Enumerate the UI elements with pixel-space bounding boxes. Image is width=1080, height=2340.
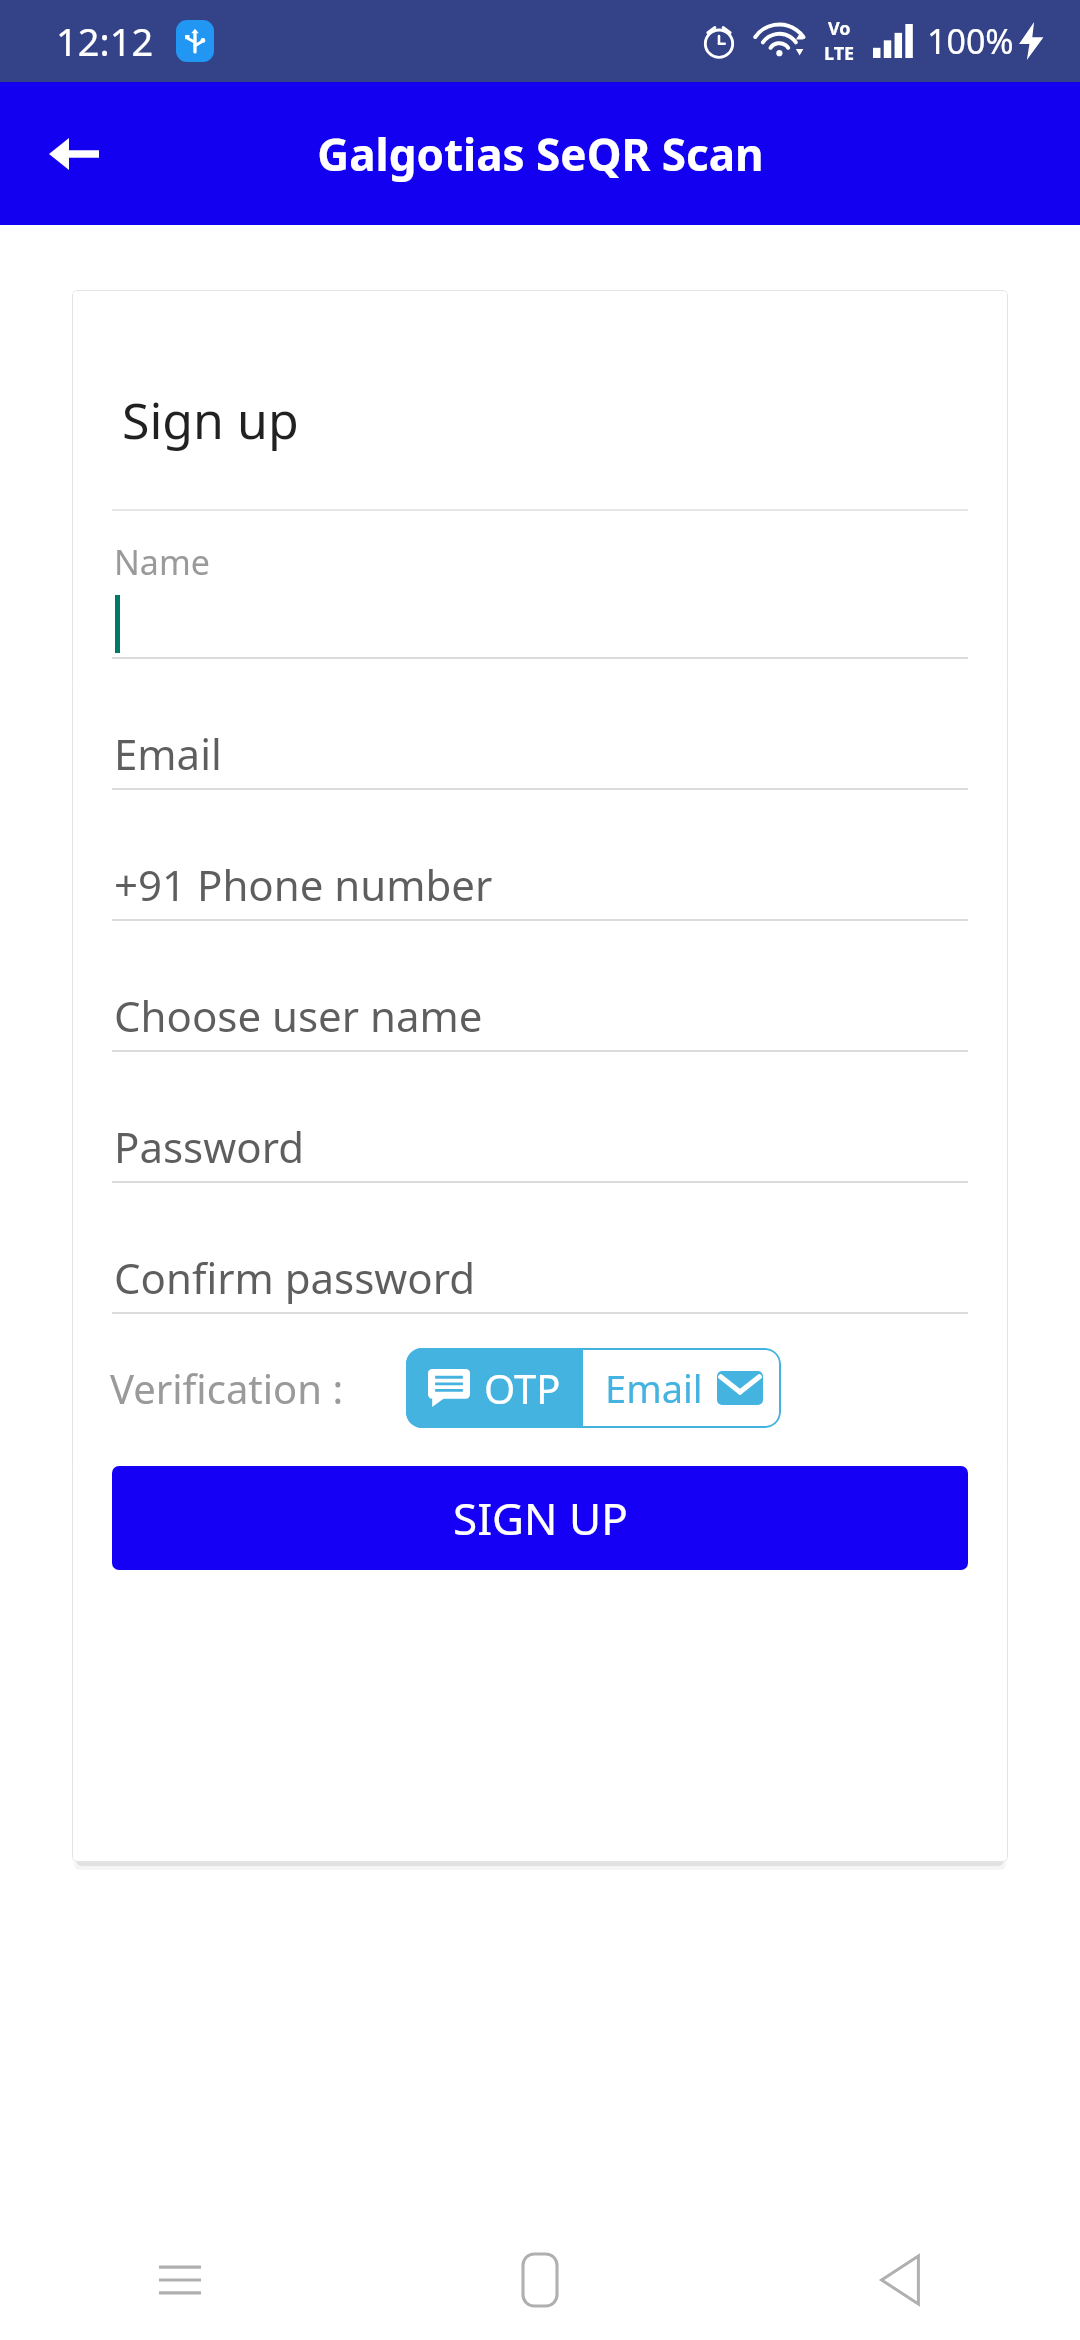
button[interactable]: Password [112,1118,968,1183]
staticText: SIGN UP [453,1488,628,1548]
button[interactable]: Home [360,2220,720,2340]
button[interactable]: Email [112,725,968,790]
button[interactable]: SIGN UP [112,1466,968,1570]
staticText: Sign up [122,386,299,454]
button[interactable]: Confirm password [112,1249,968,1314]
staticText: +91 Phone number [114,856,493,913]
staticText: Vo [828,16,851,41]
staticText: Verification : [110,1361,344,1415]
staticText: Choose user name [114,987,483,1044]
staticText: 12:12 [56,15,154,67]
staticText: Galgotias SeQR Scan [317,124,764,184]
button[interactable]: +91 Phone number [112,856,968,921]
button[interactable]: Recents [0,2220,360,2340]
staticText: Email [605,1362,703,1414]
button[interactable]: Back [26,106,122,202]
button[interactable]: Email [583,1348,781,1428]
staticText: Confirm password [114,1249,476,1306]
button[interactable]: OTP [406,1348,583,1428]
staticText: 100% [927,18,1014,64]
staticText: LTE [824,41,855,66]
staticText: Password [114,1118,304,1175]
staticText: Name [114,539,210,585]
button[interactable]: Choose user name [112,987,968,1052]
staticText: OTP [484,1361,561,1415]
button[interactable]: Back [720,2220,1080,2340]
button[interactable]: Name [112,539,968,659]
staticText: Email [114,725,222,782]
